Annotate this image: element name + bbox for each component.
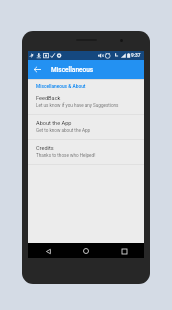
staticText: Thanks to those who Helped! [36, 153, 96, 158]
button[interactable]: About the App [28, 115, 144, 140]
staticText: Miscellaneous & About [36, 84, 86, 90]
staticText: Miscellaneous [51, 66, 94, 74]
button[interactable]: Recent apps [118, 245, 130, 257]
button[interactable]: Navigate up [28, 60, 47, 79]
staticText: Get to know about the App [36, 128, 91, 133]
staticText: Credits [36, 145, 54, 152]
button[interactable]: FeedBack [28, 90, 144, 115]
staticText: Let us know if you have any Suggestions [36, 103, 119, 108]
staticText: FeedBack [36, 95, 61, 102]
staticText: 9:37 [131, 53, 141, 59]
button[interactable]: Home [80, 245, 92, 257]
staticText: About the App [36, 120, 72, 127]
button[interactable]: Back [42, 245, 54, 257]
button[interactable]: Credits [28, 140, 144, 165]
